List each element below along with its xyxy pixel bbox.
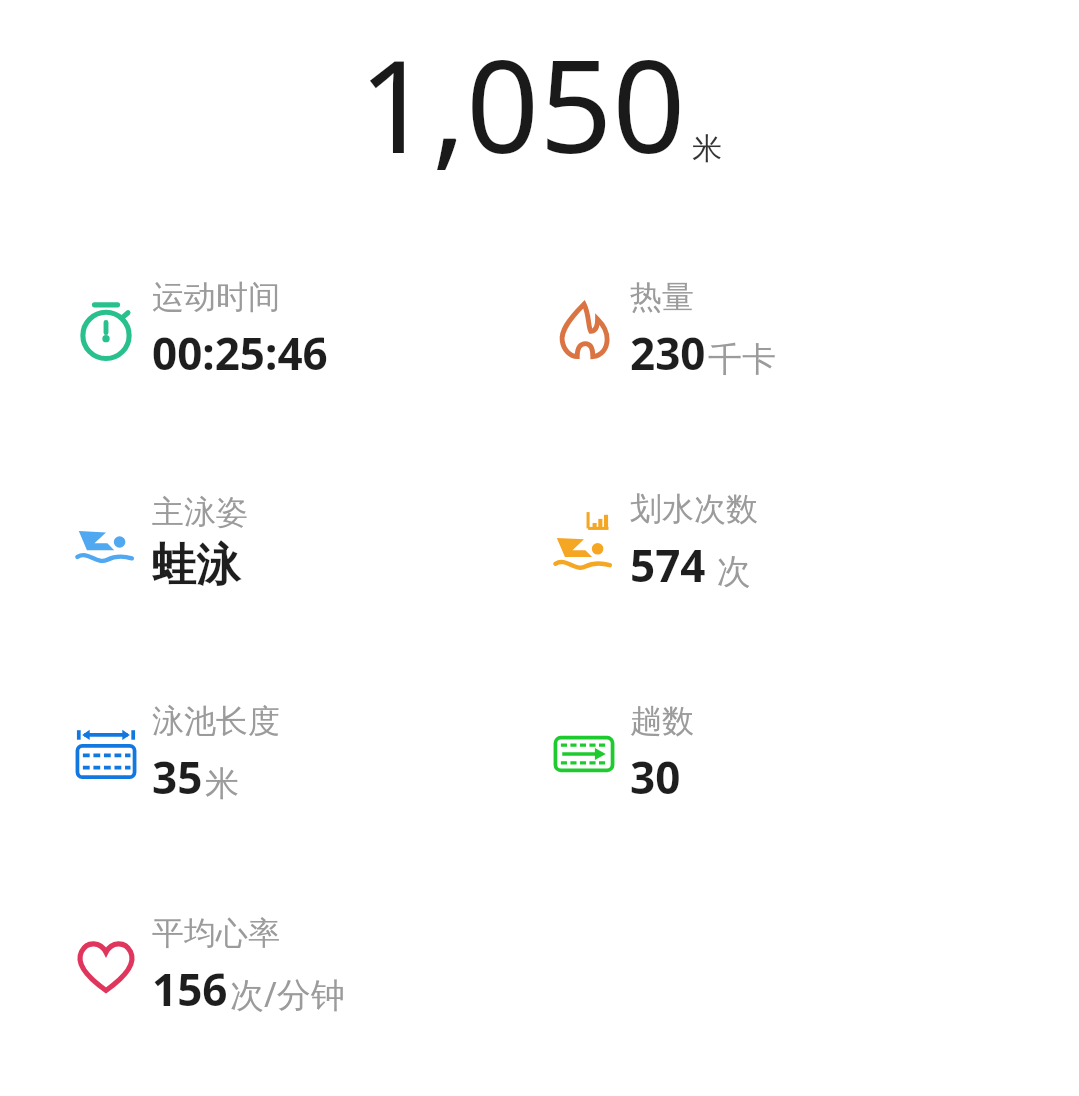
staticText: 次 [708,547,751,593]
staticText: 次/分钟 [230,971,345,1017]
staticText: 230 [630,323,706,383]
staticText: 30 [630,747,681,807]
button[interactable]: Laps [539,682,1079,826]
other: Pool length [72,720,140,788]
staticText: 00:25:46 [152,323,328,383]
staticText: 574 [630,535,706,595]
staticText: 千卡 [708,338,776,381]
button[interactable]: Duration [0,258,539,402]
button[interactable]: Pool length [0,682,539,826]
staticText: 热量 [630,277,694,317]
staticText: 划水次数 [630,489,758,529]
staticText: 35 [152,747,203,807]
staticText: 平均心率 [152,913,280,953]
staticText: 趟数 [630,701,694,741]
other: Laps [550,720,618,788]
other: Duration [72,296,140,364]
staticText: 米 [692,130,722,168]
staticText: 泳池长度 [152,701,280,741]
staticText: 156 [152,959,228,1019]
staticText: 1,050 [358,16,686,190]
other: Stroke style [72,508,140,576]
button[interactable]: Stroke style [0,470,539,614]
button[interactable]: Strokes [539,470,1079,614]
other: Strokes [550,508,618,576]
other: Average heart rate [72,932,140,1000]
staticText: 米 [205,762,239,805]
button[interactable]: Average heart rate [0,894,539,1038]
staticText: 运动时间 [152,277,280,317]
staticText: 蛙泳 [152,538,240,593]
staticText: 主泳姿 [152,492,248,532]
other: Calories [550,296,618,364]
button[interactable]: Calories [539,258,1079,402]
